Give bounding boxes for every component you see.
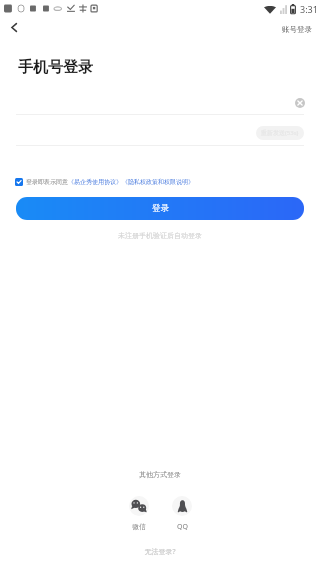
button[interactable]: 登录即表示同意 — [15, 178, 194, 186]
staticText: 账号登录 — [282, 25, 312, 34]
staticText: 手机号登录 — [18, 58, 93, 77]
staticText: 微信 — [132, 522, 146, 531]
button[interactable]: 微信 — [129, 496, 149, 531]
staticText: 其他方式登录 — [0, 470, 320, 479]
staticText: 重新发送(53s) — [261, 129, 299, 137]
button[interactable]: 重新发送(53s) — [256, 126, 304, 140]
staticText: 3:31 — [300, 3, 318, 15]
button[interactable]: 账号登录 — [274, 20, 320, 39]
staticText: 《易企秀使用协议》《隐私权政策和权限说明》 — [68, 178, 194, 186]
button[interactable]: 登录 — [16, 197, 304, 220]
button[interactable]: QQ — [172, 496, 192, 532]
staticText: QQ — [177, 522, 188, 532]
staticText: 无法登录? — [0, 547, 320, 557]
staticText: 登录 — [152, 203, 169, 214]
button[interactable]: Back — [2, 15, 26, 39]
button[interactable]: Clear — [291, 94, 308, 111]
staticText: 未注册手机验证后自动登录 — [0, 231, 320, 240]
staticText: 登录即表示同意 — [26, 178, 68, 186]
